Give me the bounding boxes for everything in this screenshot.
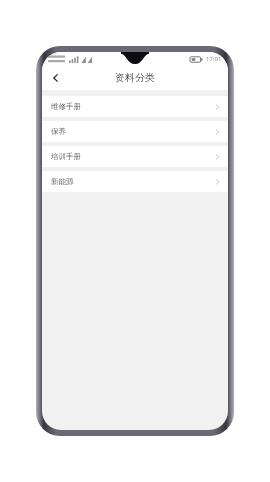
button[interactable]: 维修手册 [42, 96, 228, 117]
staticText: 17:01 [206, 55, 222, 63]
button[interactable]: 培训手册 [42, 146, 228, 167]
staticText: 新能源 [51, 177, 74, 186]
button[interactable]: 新能源 [42, 171, 228, 192]
staticText: 资料分类 [115, 71, 155, 84]
button[interactable]: 保养 [42, 121, 228, 142]
staticText: 保养 [51, 127, 66, 136]
button[interactable]: Back [42, 65, 70, 90]
staticText: 维修手册 [51, 102, 81, 111]
staticText: 培训手册 [51, 152, 81, 161]
